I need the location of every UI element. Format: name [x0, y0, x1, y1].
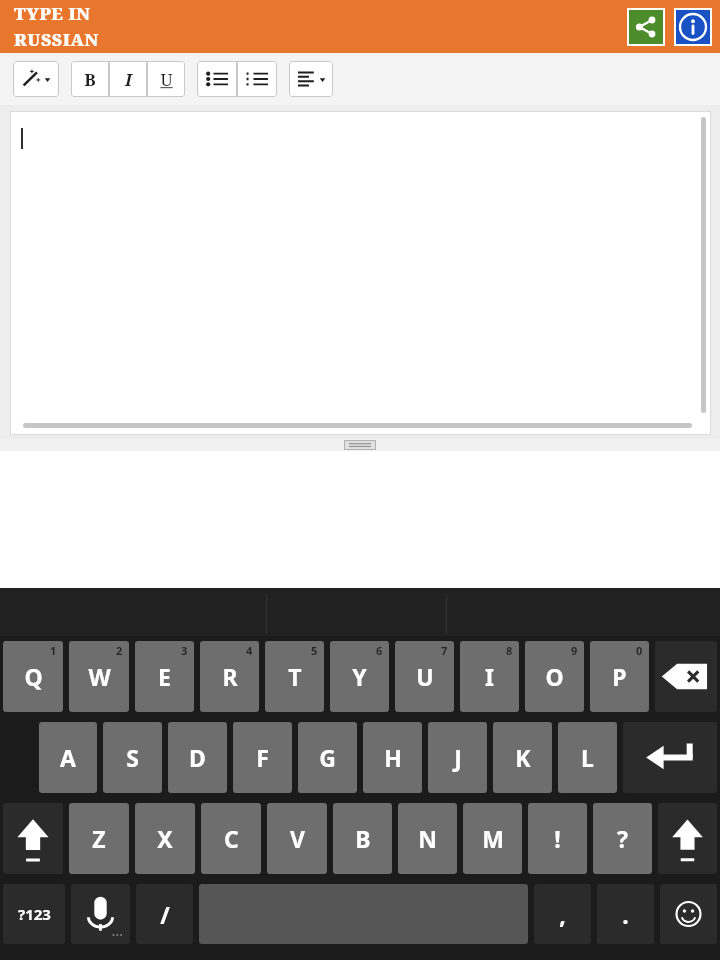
- staticText: J: [454, 742, 462, 773]
- button[interactable]: A: [39, 722, 97, 793]
- staticText: I: [125, 68, 132, 91]
- button[interactable]: Backspace: [655, 641, 717, 712]
- button[interactable]: !: [528, 803, 587, 874]
- button[interactable]: Emoji: [660, 884, 717, 944]
- staticText: W: [88, 661, 111, 692]
- button[interactable]: Formatting options: [13, 61, 59, 97]
- staticText: C: [224, 823, 239, 854]
- button[interactable]: W: [69, 641, 129, 712]
- button[interactable]: G: [298, 722, 357, 793]
- button[interactable]: S: [103, 722, 162, 793]
- staticText: U: [160, 68, 173, 91]
- staticText: 6: [376, 643, 383, 658]
- button[interactable]: Alignment: [289, 61, 333, 97]
- button[interactable]: Bulleted list: [197, 61, 237, 97]
- button[interactable]: V: [267, 803, 327, 874]
- button[interactable]: ?123: [3, 884, 65, 944]
- staticText: 7: [441, 643, 448, 658]
- button[interactable]: Shift: [658, 803, 717, 874]
- staticText: ?123: [18, 904, 51, 924]
- button[interactable]: Numbered list: [237, 61, 277, 97]
- staticText: P: [612, 661, 627, 692]
- staticText: B: [84, 68, 96, 91]
- staticText: !: [554, 823, 561, 854]
- staticText: E: [158, 661, 171, 692]
- staticText: F: [256, 742, 269, 773]
- staticText: K: [515, 742, 531, 773]
- staticText: H: [384, 742, 402, 773]
- staticText: T: [288, 661, 302, 692]
- button[interactable]: Bold: [71, 61, 109, 97]
- staticText: 2: [116, 643, 123, 658]
- button[interactable]: M: [463, 803, 522, 874]
- staticText: 4: [246, 643, 253, 658]
- staticText: 0: [636, 643, 643, 658]
- button[interactable]: [10, 111, 711, 435]
- staticText: Q: [24, 661, 43, 692]
- staticText: 5: [311, 643, 318, 658]
- staticText: S: [126, 742, 139, 773]
- button[interactable]: Italic: [109, 61, 147, 97]
- button[interactable]: C: [201, 803, 261, 874]
- staticText: G: [319, 742, 336, 773]
- button[interactable]: K: [493, 722, 552, 793]
- button[interactable]: D: [168, 722, 227, 793]
- button[interactable]: .: [597, 884, 654, 944]
- staticText: N: [418, 823, 437, 854]
- button[interactable]: Share: [627, 8, 665, 46]
- button[interactable]: X: [135, 803, 195, 874]
- staticText: ,: [559, 899, 566, 930]
- staticText: 9: [571, 643, 578, 658]
- button[interactable]: H: [363, 722, 422, 793]
- button[interactable]: ,: [534, 884, 591, 944]
- button[interactable]: R: [200, 641, 259, 712]
- staticText: TYPE IN: [14, 2, 91, 25]
- staticText: 3: [181, 643, 188, 658]
- button[interactable]: F: [233, 722, 292, 793]
- button[interactable]: Shift: [3, 803, 63, 874]
- button[interactable]: E: [135, 641, 194, 712]
- staticText: 8: [506, 643, 513, 658]
- staticText: .: [622, 899, 629, 930]
- staticText: A: [60, 742, 76, 773]
- button[interactable]: Enter: [623, 722, 717, 793]
- staticText: U: [416, 661, 434, 692]
- staticText: RUSSIAN: [14, 28, 99, 51]
- staticText: D: [189, 742, 206, 773]
- staticText: Y: [352, 661, 367, 692]
- staticText: /: [160, 899, 170, 930]
- staticText: L: [581, 742, 594, 773]
- button[interactable]: L: [558, 722, 617, 793]
- button[interactable]: /: [136, 884, 193, 944]
- button[interactable]: T: [265, 641, 324, 712]
- staticText: R: [222, 661, 238, 692]
- button[interactable]: ?: [593, 803, 652, 874]
- staticText: M: [482, 823, 504, 854]
- button[interactable]: O: [525, 641, 584, 712]
- staticText: 1: [50, 643, 57, 658]
- staticText: X: [157, 823, 173, 854]
- staticText: V: [290, 823, 305, 854]
- staticText: O: [545, 661, 564, 692]
- button[interactable]: B: [333, 803, 392, 874]
- button[interactable]: I: [460, 641, 519, 712]
- button[interactable]: Voice input: [71, 884, 130, 944]
- staticText: I: [485, 661, 494, 692]
- staticText: Z: [92, 823, 106, 854]
- button[interactable]: Z: [69, 803, 129, 874]
- button[interactable]: P: [590, 641, 649, 712]
- button[interactable]: Underline: [147, 61, 185, 97]
- button[interactable]: Q: [3, 641, 63, 712]
- button[interactable]: J: [428, 722, 487, 793]
- button[interactable]: Info: [674, 8, 712, 46]
- staticText: ?: [617, 823, 628, 854]
- button[interactable]: U: [395, 641, 454, 712]
- button[interactable]: N: [398, 803, 457, 874]
- button[interactable]: Y: [330, 641, 389, 712]
- staticText: B: [355, 823, 371, 854]
